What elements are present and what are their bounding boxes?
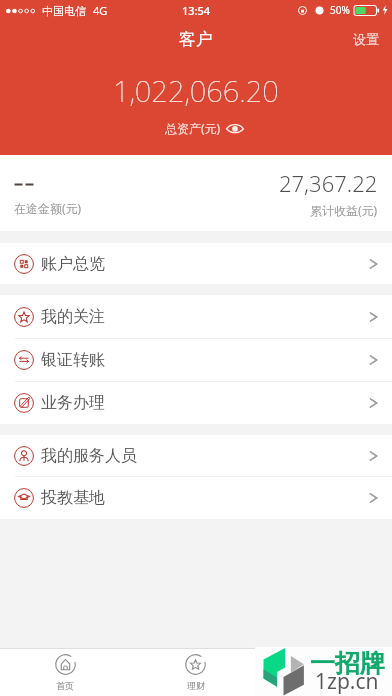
staticText: 账户总览 <box>41 254 105 274</box>
staticText: 总资产(元) <box>165 120 221 136</box>
staticText: 累计收益(元) <box>310 202 378 218</box>
staticText: 1zp.cn <box>315 667 379 696</box>
staticText: 客户 <box>179 29 213 50</box>
button[interactable]: 首页 <box>0 648 130 696</box>
button[interactable]: 我的服务人员 <box>0 435 392 476</box>
staticText: 银证转账 <box>41 350 105 370</box>
button[interactable]: 投教基地 <box>0 477 392 519</box>
staticText: 1,022,066.20 <box>113 71 279 110</box>
button[interactable]: 我的 <box>261 648 392 696</box>
button[interactable]: 账户总览 <box>0 243 392 284</box>
button[interactable]: 银证转账 <box>0 339 392 381</box>
staticText: 投教基地 <box>41 488 105 508</box>
staticText: 27,367.22 <box>279 168 378 198</box>
staticText: 我的 <box>318 680 336 691</box>
button[interactable]: 业务办理 <box>0 382 392 424</box>
staticText: 一招牌 <box>310 648 385 679</box>
staticText: 理财 <box>187 680 205 691</box>
staticText: 中国电信 <box>42 4 86 18</box>
staticText: 13:54 <box>182 3 211 18</box>
staticText: 50% <box>330 3 350 17</box>
button[interactable]: 我的关注 <box>0 295 392 338</box>
staticText: 设置 <box>353 31 379 47</box>
button[interactable]: 理财 <box>130 648 261 696</box>
staticText: 4G <box>93 3 108 18</box>
staticText: 我的服务人员 <box>41 446 137 466</box>
staticText: 我的关注 <box>41 307 105 327</box>
staticText: 业务办理 <box>41 393 105 413</box>
staticText: 在途金额(元) <box>14 200 82 216</box>
staticText: 首页 <box>56 680 74 691</box>
button[interactable]: 设置 <box>340 23 392 55</box>
